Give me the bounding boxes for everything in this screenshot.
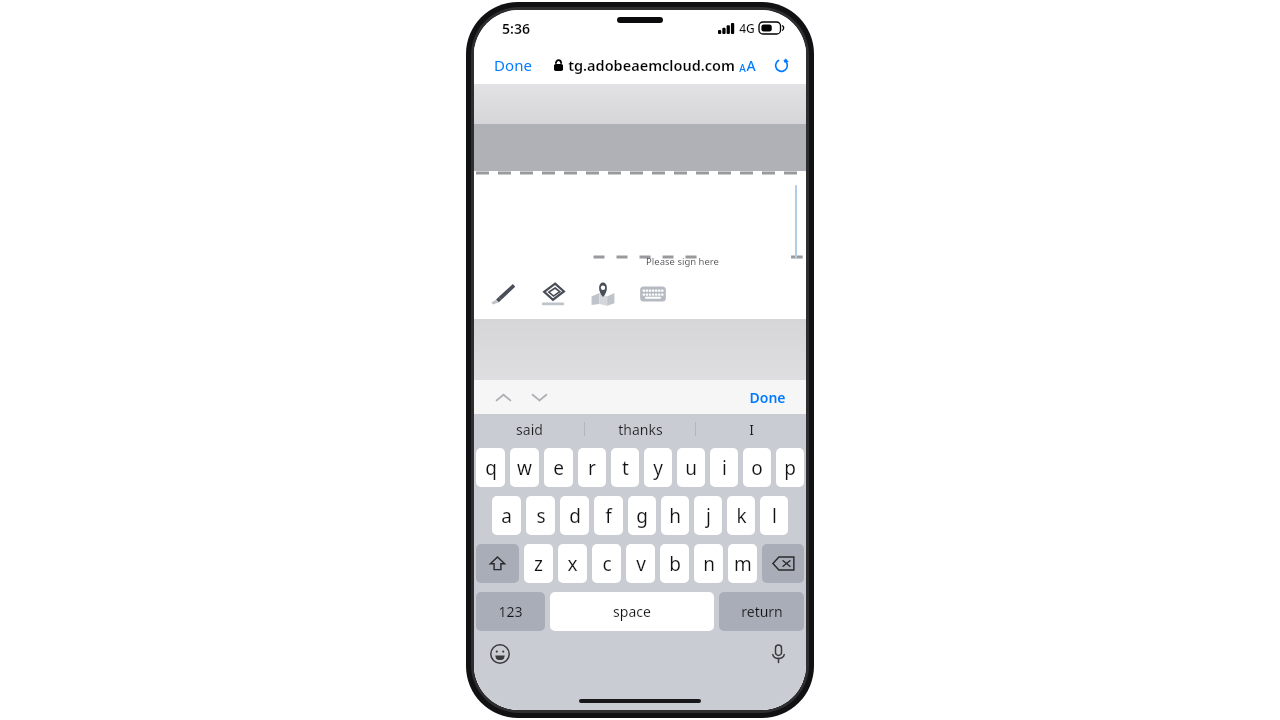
button[interactable]: Brush tool xyxy=(486,277,520,311)
staticText: 4G xyxy=(739,20,755,36)
button[interactable]: f xyxy=(594,496,623,535)
button[interactable]: h xyxy=(661,496,689,535)
button[interactable]: q xyxy=(476,448,505,487)
button[interactable]: z xyxy=(524,544,553,583)
staticText: A xyxy=(739,61,746,75)
button[interactable]: Dictation xyxy=(764,640,792,668)
staticText: return xyxy=(741,602,783,621)
staticText: A xyxy=(746,56,756,75)
staticText: Please sign here xyxy=(646,255,719,268)
button[interactable]: Done xyxy=(488,51,538,79)
button[interactable]: Keyboard tool xyxy=(636,277,670,311)
button[interactable]: s xyxy=(526,496,555,535)
staticText: u xyxy=(685,455,697,481)
staticText: b xyxy=(669,551,681,577)
button[interactable]: I xyxy=(696,414,806,444)
button[interactable]: Emoji keyboard xyxy=(486,640,514,668)
button[interactable]: i xyxy=(710,448,738,487)
staticText: I xyxy=(749,420,754,439)
staticText: z xyxy=(534,551,543,577)
staticText: said xyxy=(516,420,543,439)
button[interactable]: m xyxy=(728,544,757,583)
button[interactable]: d xyxy=(560,496,589,535)
staticText: v xyxy=(636,551,646,577)
staticText: n xyxy=(703,551,715,577)
button[interactable]: o xyxy=(743,448,771,487)
button[interactable]: l xyxy=(760,496,788,535)
button[interactable]: w xyxy=(510,448,539,487)
button[interactable]: Previous field xyxy=(490,384,516,410)
button[interactable]: space xyxy=(550,592,714,631)
staticText: o xyxy=(751,455,763,481)
staticText: q xyxy=(485,455,497,481)
button[interactable]: Text size options xyxy=(736,53,759,78)
staticText: thanks xyxy=(618,420,663,439)
staticText: j xyxy=(706,503,711,529)
staticText: 5:36 xyxy=(502,19,530,38)
staticText: 123 xyxy=(498,602,523,621)
button[interactable]: return xyxy=(719,592,804,631)
staticText: g xyxy=(636,503,648,529)
staticText: f xyxy=(605,503,612,529)
staticText: s xyxy=(536,503,546,529)
button[interactable]: Done xyxy=(743,385,792,410)
staticText: r xyxy=(588,455,596,481)
staticText: y xyxy=(653,455,663,481)
staticText: Done xyxy=(749,388,786,407)
staticText: d xyxy=(569,503,581,529)
staticText: t xyxy=(622,455,629,481)
button[interactable]: Location tool xyxy=(586,277,620,311)
button[interactable]: g xyxy=(628,496,656,535)
button[interactable]: Eraser tool xyxy=(536,277,570,311)
staticText: w xyxy=(517,455,532,481)
staticText: space xyxy=(613,602,651,621)
staticText: l xyxy=(772,503,777,529)
button[interactable]: x xyxy=(558,544,587,583)
button[interactable]: thanks xyxy=(585,414,695,444)
button[interactable]: r xyxy=(578,448,606,487)
staticText: i xyxy=(722,455,727,481)
button[interactable]: u xyxy=(677,448,705,487)
button[interactable]: b xyxy=(660,544,689,583)
button[interactable]: Shift xyxy=(476,544,519,583)
button[interactable]: Reload page xyxy=(771,55,792,76)
staticText: m xyxy=(734,551,752,577)
staticText: tg.adobeaemcloud.com xyxy=(568,55,735,75)
button[interactable]: 123 xyxy=(476,592,545,631)
staticText: a xyxy=(501,503,512,529)
staticText: x xyxy=(567,551,578,577)
button[interactable]: c xyxy=(592,544,621,583)
button[interactable]: j xyxy=(694,496,722,535)
staticText: p xyxy=(784,455,796,481)
button[interactable]: said xyxy=(474,414,584,444)
staticText: Done xyxy=(494,55,532,75)
button[interactable]: n xyxy=(694,544,723,583)
button[interactable]: a xyxy=(492,496,521,535)
button[interactable]: e xyxy=(544,448,573,487)
staticText: h xyxy=(669,503,681,529)
staticText: k xyxy=(736,503,747,529)
button[interactable]: t xyxy=(611,448,639,487)
button[interactable]: v xyxy=(626,544,655,583)
button[interactable]: p xyxy=(776,448,804,487)
button[interactable]: y xyxy=(644,448,672,487)
staticText: c xyxy=(602,551,612,577)
button[interactable]: Backspace xyxy=(762,544,804,583)
button[interactable]: k xyxy=(727,496,755,535)
button[interactable]: Next field xyxy=(526,384,552,410)
staticText: e xyxy=(553,455,564,481)
